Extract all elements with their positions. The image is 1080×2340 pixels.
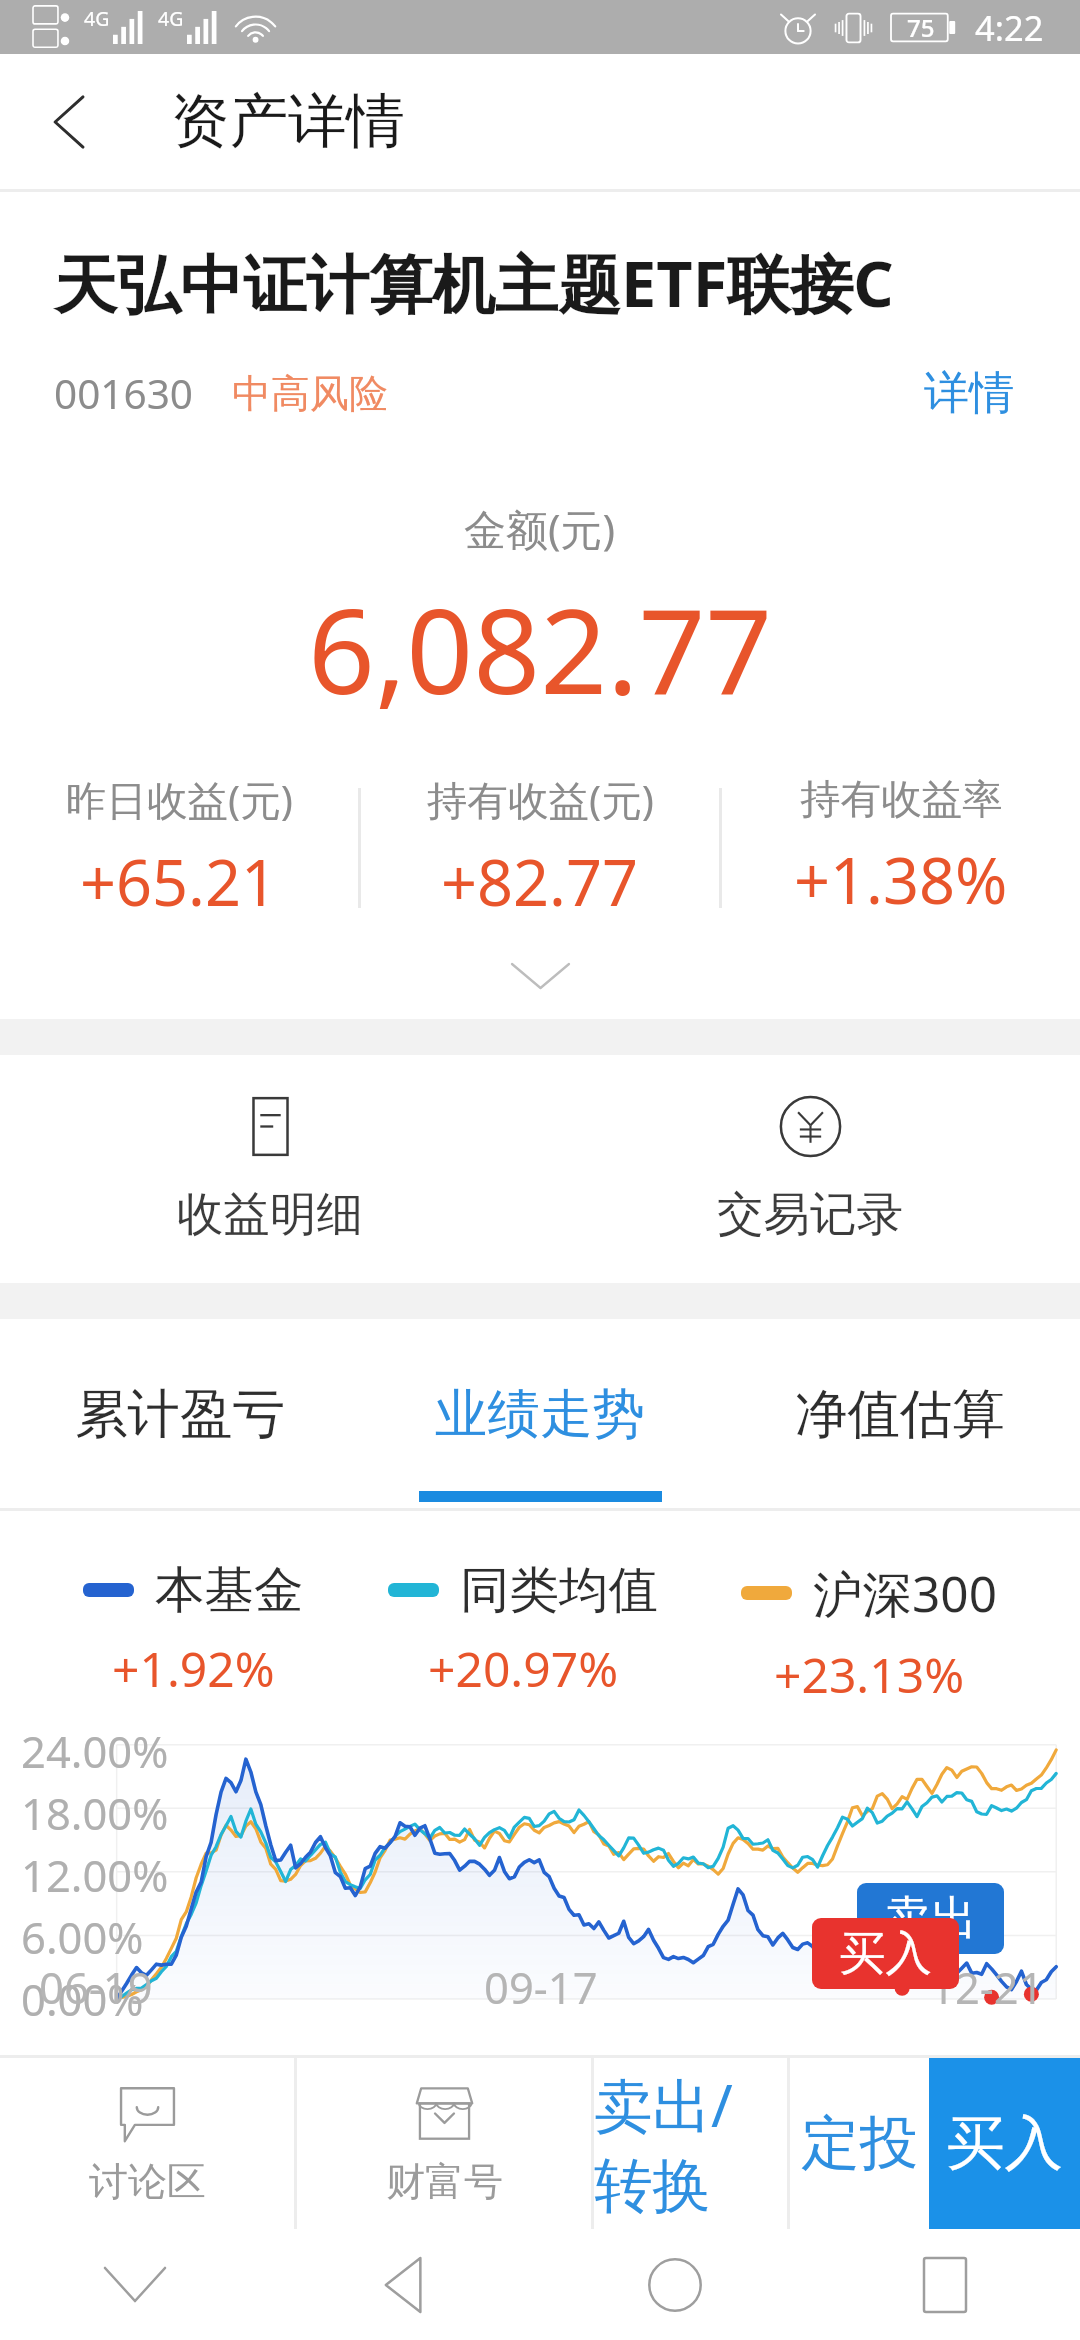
staticText: 4G	[84, 5, 110, 32]
staticText: 4G	[158, 5, 184, 32]
staticText: 业绩走势	[435, 1381, 645, 1447]
staticText: 4:22	[975, 4, 1044, 51]
staticText: 收益明细	[177, 1185, 363, 1244]
button[interactable]: 净值估算	[720, 1319, 1080, 1508]
staticText: 买入	[946, 2107, 1063, 2181]
staticText: 天弘中证计算机主题ETF联接C	[54, 240, 894, 326]
staticText: +1.38%	[794, 837, 1008, 923]
staticText: 沪深300	[813, 1559, 997, 1627]
staticText: +65.21	[80, 839, 278, 925]
staticText: 持有收益率	[800, 774, 1003, 825]
staticText: 本基金	[155, 1559, 304, 1621]
staticText: 6.00%	[21, 1907, 144, 1966]
staticText: 18.00%	[21, 1783, 169, 1842]
staticText: 资产详情	[171, 85, 405, 159]
staticText: 06-19	[39, 1957, 153, 2016]
staticText: 昨日收益(元)	[66, 772, 293, 827]
button[interactable]: 卖出/转换	[594, 2058, 787, 2229]
button[interactable]: 买入	[929, 2058, 1080, 2229]
staticText: 财富号	[386, 2157, 503, 2206]
staticText: 同类均值	[460, 1559, 658, 1621]
button[interactable]: 累计盈亏	[0, 1319, 360, 1508]
button[interactable]: 卖出	[857, 1883, 1004, 1954]
button[interactable]: 业绩走势	[360, 1319, 720, 1508]
staticText: 12-21	[930, 1957, 1044, 2016]
staticText: +20.97%	[428, 1636, 619, 1701]
staticText: 09-17	[484, 1957, 598, 2016]
button[interactable]: Hide	[0, 2229, 270, 2340]
staticText: +82.77	[441, 839, 639, 925]
staticText: 净值估算	[795, 1381, 1005, 1447]
button[interactable]: 讨论区	[0, 2058, 294, 2229]
staticText: +1.92%	[112, 1636, 275, 1701]
button[interactable]: 定投	[790, 2058, 929, 2229]
staticText: 卖出	[884, 1889, 977, 1948]
button[interactable]: Expand details	[471, 950, 609, 1001]
button[interactable]: Back	[0, 54, 138, 189]
staticText: 累计盈亏	[75, 1381, 285, 1447]
staticText: 中高风险	[232, 369, 388, 418]
button[interactable]: 收益明细	[0, 1055, 540, 1283]
button[interactable]: Recents	[810, 2229, 1080, 2340]
staticText: 交易记录	[717, 1185, 903, 1244]
button[interactable]: 交易记录	[540, 1055, 1080, 1283]
button[interactable]: 详情	[912, 353, 1026, 434]
button[interactable]: Home	[540, 2229, 810, 2340]
staticText: 24.00%	[21, 1721, 169, 1780]
staticText: 001630	[54, 366, 193, 421]
staticText: 讨论区	[89, 2157, 206, 2206]
staticText: 持有收益(元)	[427, 772, 654, 827]
staticText: 0.00%	[21, 1969, 144, 2028]
staticText: 卖出/转换	[594, 2064, 787, 2223]
staticText: 详情	[924, 365, 1014, 422]
staticText: 75	[907, 11, 935, 44]
staticText: 金额(元)	[464, 500, 616, 557]
button[interactable]: 财富号	[297, 2058, 591, 2229]
staticText: 定投	[801, 2107, 918, 2181]
staticText: 6,082.77	[308, 569, 773, 728]
staticText: +23.13%	[774, 1642, 965, 1707]
button[interactable]: Back	[270, 2229, 540, 2340]
staticText: 买入	[839, 1924, 932, 1983]
button[interactable]: 买入	[812, 1918, 959, 1989]
staticText: 12.00%	[21, 1845, 169, 1904]
